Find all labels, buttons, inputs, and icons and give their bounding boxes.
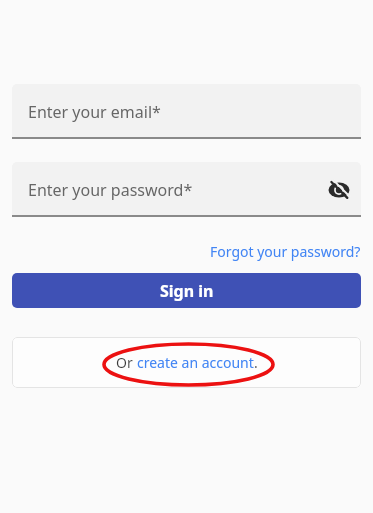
button[interactable]: Enter your email* xyxy=(12,84,361,139)
button[interactable]: Enter your password* xyxy=(12,162,361,217)
button[interactable]: Sign in xyxy=(12,273,361,308)
staticText: Forgot your password? xyxy=(210,242,361,261)
staticText: Enter your email* xyxy=(28,101,161,123)
staticText: Enter your password* xyxy=(28,179,193,201)
button[interactable] xyxy=(327,178,351,202)
staticText: Or xyxy=(116,353,137,372)
staticText: create an account xyxy=(137,353,254,372)
button[interactable]: create an account xyxy=(137,353,254,372)
staticText: . xyxy=(254,353,258,372)
staticText: Sign in xyxy=(160,280,214,302)
button[interactable]: Forgot your password? xyxy=(210,242,361,261)
